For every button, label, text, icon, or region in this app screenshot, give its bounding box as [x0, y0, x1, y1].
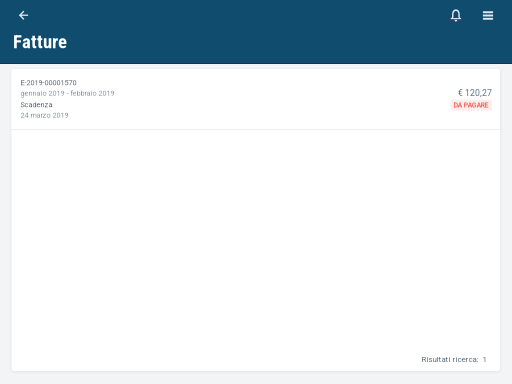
- staticText: DA PAGARE: [454, 101, 489, 109]
- button[interactable]: E-2019-00001570: [11, 69, 500, 129]
- staticText: Risultati ricerca: 1: [421, 355, 486, 364]
- staticText: 24 marzo 2019: [20, 111, 68, 119]
- staticText: Scadenza: [20, 100, 52, 109]
- button[interactable]: Menu: [475, 2, 501, 28]
- button[interactable]: Notifications: [443, 2, 469, 28]
- staticText: € 120,27: [458, 88, 492, 98]
- staticText: gennaio 2019 - febbraio 2019: [20, 89, 114, 97]
- staticText: E-2019-00001570: [20, 78, 76, 87]
- button[interactable]: Back: [10, 2, 36, 28]
- staticText: Fatture: [13, 31, 67, 53]
